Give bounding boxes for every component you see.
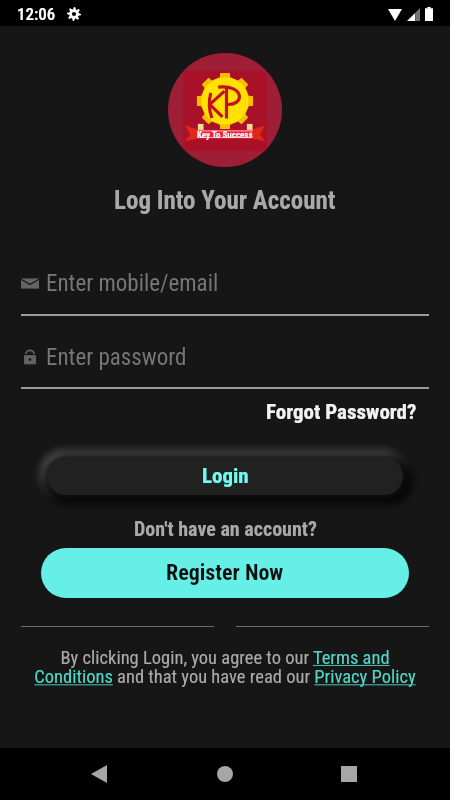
- staticText: 12:06: [17, 4, 56, 24]
- button[interactable]: Forgot Password?: [266, 400, 417, 425]
- button[interactable]: Recent apps: [330, 755, 368, 793]
- staticText: Login: [202, 464, 249, 489]
- staticText: By clicking Login, you agree to our Term…: [30, 647, 420, 688]
- button[interactable]: Login: [47, 457, 403, 495]
- staticText: Forgot Password?: [266, 400, 417, 425]
- button[interactable]: Settings: [64, 4, 84, 24]
- staticText: Don't have an account?: [134, 517, 317, 540]
- button[interactable]: Register Now: [41, 548, 409, 598]
- button[interactable]: Back: [80, 755, 118, 793]
- staticText: Key To Success: [197, 130, 253, 141]
- staticText: Log Into Your Account: [114, 186, 336, 215]
- staticText: Enter mobile/email: [46, 270, 219, 297]
- staticText: Register Now: [166, 560, 284, 586]
- button[interactable]: Home: [206, 755, 244, 793]
- button[interactable]: By clicking Login, you agree to our Term…: [30, 647, 420, 688]
- staticText: Enter password: [46, 344, 187, 371]
